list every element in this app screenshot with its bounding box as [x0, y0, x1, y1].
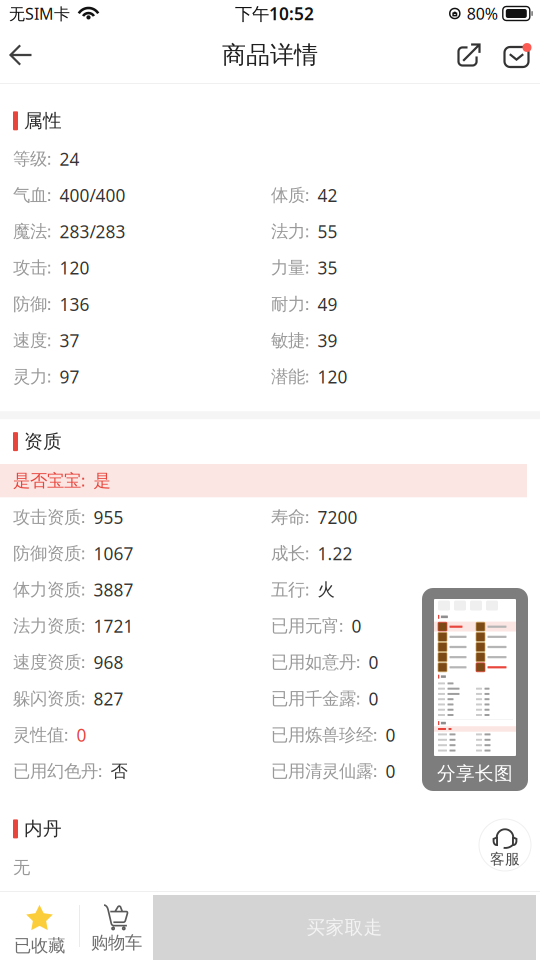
- staticText: 24: [59, 147, 79, 170]
- staticText: 120: [317, 365, 347, 388]
- staticText: ：: [298, 293, 315, 315]
- staticText: 120: [59, 256, 89, 279]
- staticText: 商品详情: [222, 40, 318, 70]
- staticText: 是: [93, 470, 110, 491]
- staticText: 体力资质: [13, 579, 81, 600]
- staticText: 速度: [13, 330, 47, 351]
- staticText: 速度资质: [13, 652, 81, 673]
- button[interactable]: 消息: [496, 27, 540, 83]
- staticText: ：: [40, 221, 57, 242]
- staticText: 魔法: [13, 221, 47, 242]
- staticText: ：: [298, 330, 315, 351]
- staticText: 买家取走: [306, 916, 382, 939]
- staticText: 0: [76, 723, 86, 746]
- staticText: ：: [74, 615, 91, 637]
- staticText: 属性: [24, 109, 62, 132]
- staticText: 42: [317, 184, 337, 207]
- staticText: ：: [349, 652, 366, 673]
- staticText: 否: [110, 761, 127, 782]
- staticText: 防御: [13, 293, 47, 315]
- staticText: 攻击资质: [13, 506, 81, 528]
- staticText: ：: [74, 579, 91, 600]
- staticText: 下午10:52: [235, 2, 314, 25]
- button[interactable]: 分享: [442, 27, 496, 83]
- staticText: 37: [59, 329, 79, 352]
- staticText: 攻击: [13, 257, 47, 278]
- staticText: ：: [298, 579, 315, 600]
- staticText: 已用炼兽珍经: [271, 724, 373, 746]
- staticText: 0: [368, 651, 378, 674]
- staticText: ：: [298, 185, 315, 206]
- staticText: 136: [59, 293, 89, 316]
- staticText: 体质: [271, 185, 305, 206]
- staticText: 火: [317, 579, 334, 600]
- staticText: 283/283: [59, 220, 125, 243]
- staticText: 968: [93, 651, 123, 674]
- staticText: 是否宝宝: [13, 470, 81, 491]
- staticText: ：: [332, 615, 349, 637]
- staticText: ：: [298, 366, 315, 387]
- staticText: 等级: [13, 148, 47, 170]
- staticText: ：: [298, 506, 315, 528]
- staticText: 客服: [490, 850, 520, 868]
- staticText: ：: [366, 761, 383, 782]
- staticText: ：: [298, 257, 315, 278]
- staticText: 潜能: [271, 366, 305, 387]
- staticText: 已收藏: [14, 935, 65, 956]
- staticText: 耐力: [271, 293, 305, 315]
- staticText: 827: [93, 687, 123, 710]
- staticText: 已用元宵: [271, 615, 339, 637]
- button[interactable]: 返回: [0, 27, 42, 83]
- staticText: ：: [40, 330, 57, 351]
- staticText: 防御资质: [13, 543, 81, 564]
- staticText: 成长: [271, 543, 305, 564]
- staticText: 灵力: [13, 366, 47, 387]
- staticText: 力量: [271, 257, 305, 278]
- staticText: 灵性值: [13, 724, 64, 746]
- staticText: ：: [298, 543, 315, 564]
- staticText: 80%: [467, 3, 498, 24]
- staticText: ：: [366, 724, 383, 746]
- staticText: 寿命: [271, 506, 305, 528]
- staticText: 0: [385, 760, 395, 783]
- staticText: 3887: [93, 578, 133, 601]
- staticText: 97: [59, 365, 79, 388]
- staticText: 1067: [93, 542, 133, 565]
- staticText: 0: [351, 614, 361, 637]
- staticText: ：: [74, 652, 91, 673]
- staticText: 法力: [271, 221, 305, 242]
- staticText: 35: [317, 256, 337, 279]
- staticText: ：: [40, 293, 57, 315]
- button[interactable]: 购物车: [80, 892, 153, 960]
- button[interactable]: 分享长图: [422, 588, 528, 791]
- button[interactable]: 买家取走: [153, 895, 536, 960]
- staticText: 1721: [93, 614, 133, 637]
- staticText: ：: [40, 185, 57, 206]
- staticText: ：: [40, 257, 57, 278]
- button[interactable]: 客服: [479, 819, 531, 871]
- button[interactable]: 已收藏: [0, 892, 79, 960]
- staticText: 购物车: [91, 932, 142, 953]
- staticText: 躲闪资质: [13, 688, 81, 709]
- staticText: 无SIM卡: [9, 3, 70, 24]
- staticText: ：: [74, 688, 91, 709]
- staticText: ：: [74, 506, 91, 528]
- staticText: ：: [91, 761, 108, 782]
- staticText: 400/400: [59, 184, 125, 207]
- staticText: ：: [349, 688, 366, 709]
- staticText: 已用幻色丹: [13, 761, 98, 782]
- staticText: 955: [93, 506, 123, 529]
- staticText: 已用如意丹: [271, 652, 356, 673]
- staticText: 7200: [317, 506, 357, 529]
- staticText: 0: [368, 687, 378, 710]
- staticText: ：: [40, 366, 57, 387]
- staticText: 无: [13, 857, 30, 878]
- staticText: 1.22: [317, 542, 352, 565]
- staticText: 内丹: [24, 817, 62, 840]
- staticText: 敏捷: [271, 330, 305, 351]
- staticText: 已用千金露: [271, 688, 356, 709]
- staticText: 分享长图: [437, 762, 513, 785]
- staticText: 资质: [24, 430, 62, 453]
- staticText: ：: [74, 543, 91, 564]
- staticText: ：: [298, 221, 315, 242]
